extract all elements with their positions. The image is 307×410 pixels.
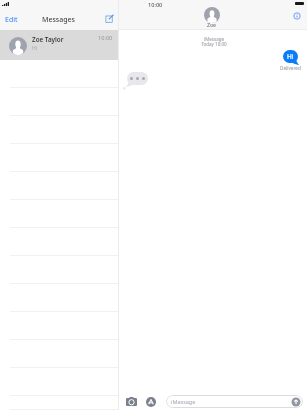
- staticText: iMessage: [171, 398, 196, 405]
- button[interactable]: Camera: [126, 397, 137, 406]
- button[interactable]: New message: [105, 14, 114, 23]
- button[interactable]: iMessage: [166, 395, 303, 408]
- staticText: 10:00: [148, 1, 163, 9]
- button[interactable]: Zoe Taylor: [0, 30, 118, 60]
- button[interactable]: Send: [291, 397, 301, 407]
- staticText: Delivered: [280, 65, 301, 71]
- staticText: Zoe Taylor: [32, 35, 64, 44]
- button[interactable]: Zoe: [204, 7, 220, 30]
- button[interactable]: Apps: [146, 397, 156, 407]
- staticText: Zoe: [207, 21, 217, 28]
- staticText: Hi: [32, 45, 37, 52]
- staticText: 10:00: [98, 34, 113, 42]
- button[interactable]: Details: [293, 12, 301, 20]
- staticText: Edit: [5, 15, 18, 25]
- staticText: Hi: [287, 52, 294, 61]
- staticText: iMessage Today 10:00: [120, 36, 307, 48]
- button[interactable]: Edit: [4, 15, 19, 25]
- button[interactable]: [0, 396, 118, 410]
- staticText: Messages: [42, 15, 76, 25]
